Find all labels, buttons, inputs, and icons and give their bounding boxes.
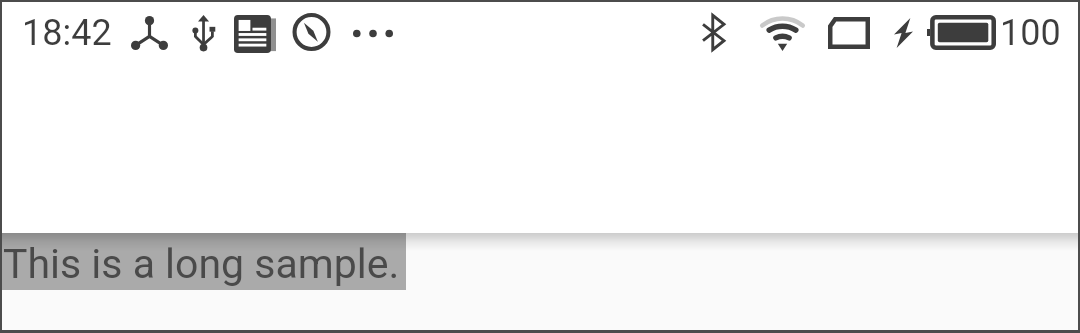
other: Bluetooth: [701, 13, 726, 52]
other: More notifications: [353, 29, 393, 38]
other: Battery: [927, 15, 996, 50]
other: ADB debugging: [131, 16, 168, 50]
staticText: This is a long sample.: [3, 240, 400, 288]
other: Mobile signal: [828, 17, 870, 49]
other: Charging: [894, 18, 913, 48]
other: Wi-Fi: [759, 16, 806, 52]
staticText: 18:42: [22, 12, 112, 54]
other: USB connected: [192, 15, 216, 52]
other: Compass: [291, 13, 332, 51]
button[interactable]: This is a long sample.: [0, 233, 406, 290]
other: News: [234, 15, 276, 53]
staticText: 100: [1000, 12, 1061, 54]
